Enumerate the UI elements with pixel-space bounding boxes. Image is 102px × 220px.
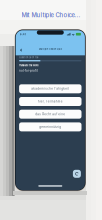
staticText: Mit Multiple Choice... — [21, 11, 80, 19]
staticText: hier, Teilnahme — [38, 100, 63, 103]
button[interactable]: gemeinnützig — [19, 122, 81, 131]
staticText: gemeinnützig — [39, 125, 61, 129]
button[interactable]: akademische Fähigkeit — [19, 84, 81, 93]
staticText: Question 36 of 106 — [19, 56, 38, 59]
staticText: das Recht auf eine — [35, 112, 65, 116]
staticText: not-for-profit — [19, 69, 38, 72]
staticText: Multiple Choice Quiz — [39, 48, 62, 51]
button[interactable]: Back — [18, 47, 23, 53]
button[interactable]: Replay audio — [73, 170, 81, 178]
staticText: 9:41 — [20, 33, 26, 36]
button[interactable]: das Recht auf eine — [19, 110, 81, 119]
staticText: akademische Fähigkeit — [31, 87, 69, 91]
button[interactable]: hier, Teilnahme — [19, 97, 81, 106]
staticText: Translate the word — [19, 64, 38, 67]
